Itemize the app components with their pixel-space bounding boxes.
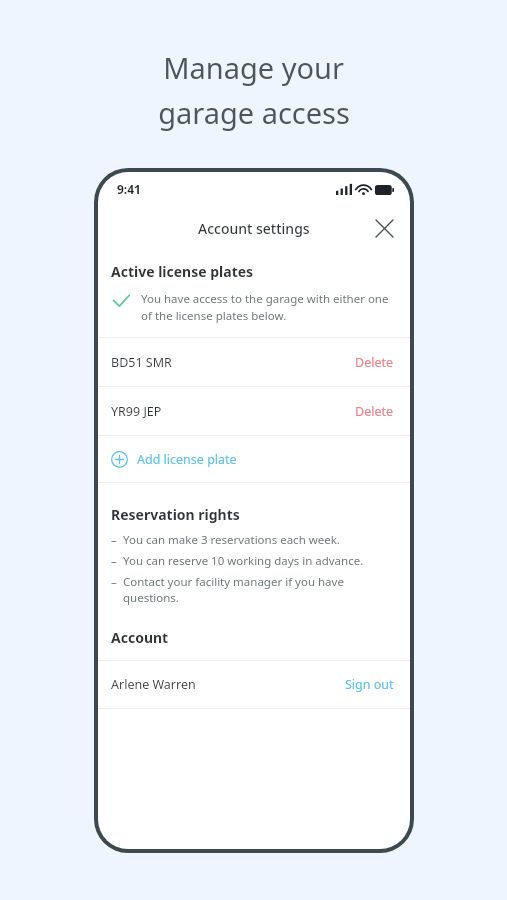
button[interactable]: BD51 SMR bbox=[98, 338, 410, 386]
button[interactable]: Close bbox=[367, 211, 401, 245]
staticText: Account settings bbox=[198, 219, 310, 238]
staticText: YR99 JEP bbox=[111, 403, 162, 420]
staticText: Arlene Warren bbox=[111, 676, 196, 693]
button[interactable]: Add license plate bbox=[98, 436, 410, 482]
staticText: You can make 3 reservations each week. bbox=[123, 532, 340, 548]
staticText: 9:41 bbox=[117, 181, 141, 197]
staticText: – bbox=[111, 532, 117, 548]
staticText: Add license plate bbox=[137, 451, 237, 468]
staticText: garage access bbox=[158, 93, 350, 132]
staticText: Account bbox=[111, 628, 169, 647]
button[interactable]: Delete bbox=[353, 397, 396, 426]
staticText: Delete bbox=[355, 354, 394, 371]
staticText: You can reserve 10 working days in advan… bbox=[123, 553, 364, 569]
staticText: Active license plates bbox=[111, 262, 254, 281]
button[interactable]: YR99 JEP bbox=[98, 387, 410, 435]
button[interactable]: Sign out bbox=[343, 670, 396, 699]
staticText: Sign out bbox=[345, 676, 394, 693]
staticText: BD51 SMR bbox=[111, 354, 172, 371]
staticText: Delete bbox=[355, 403, 394, 420]
staticText: – bbox=[111, 574, 117, 590]
staticText: – bbox=[111, 553, 117, 569]
button[interactable]: Delete bbox=[353, 348, 396, 377]
staticText: Manage your bbox=[163, 48, 344, 87]
staticText: Reservation rights bbox=[111, 505, 240, 524]
staticText: You have access to the garage with eithe… bbox=[141, 291, 394, 323]
button[interactable]: Arlene Warren bbox=[98, 661, 410, 708]
staticText: Contact your facility manager if you hav… bbox=[123, 574, 398, 605]
